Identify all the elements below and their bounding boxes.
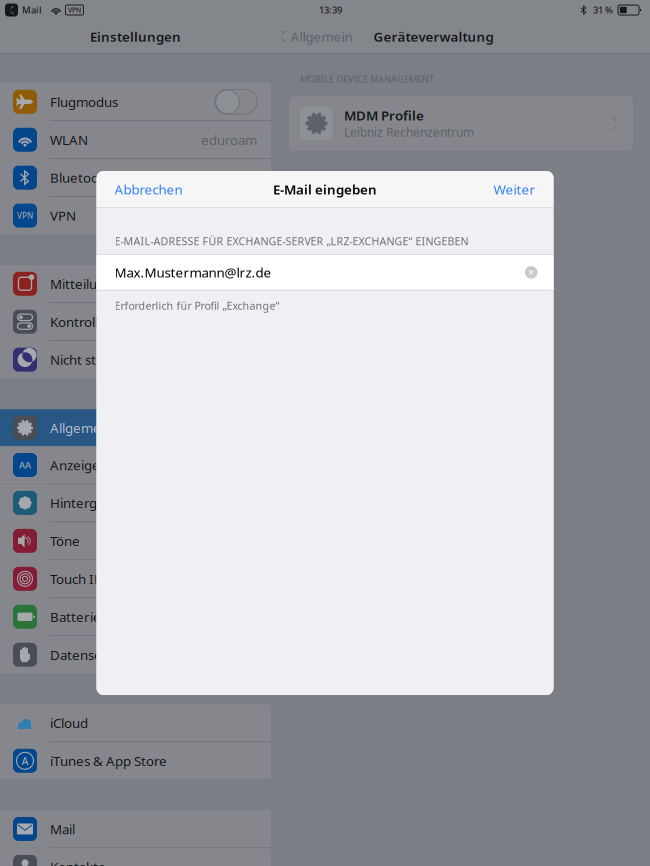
staticText: Erforderlich für Profil „Exchange“ <box>114 298 279 313</box>
button[interactable]: iCloud <box>0 704 271 741</box>
button[interactable]: Weiter <box>493 171 553 207</box>
button[interactable]: Mail <box>0 810 271 847</box>
staticText: Kontakte <box>50 858 106 866</box>
staticText: Hintergrundbild <box>50 494 149 512</box>
button[interactable]: Batterie <box>0 598 271 635</box>
button[interactable]: Flugmodus <box>0 83 271 120</box>
button[interactable]: Allgemein <box>271 20 352 53</box>
staticText: E-MAIL-ADRESSE FÜR EXCHANGE-SERVER „LRZ-… <box>114 234 468 248</box>
staticText: Weiter <box>493 180 535 198</box>
staticText: Mitteilungen <box>50 275 129 293</box>
staticText: Kontrollzentrum <box>50 313 151 331</box>
staticText: Ein <box>239 169 257 186</box>
button[interactable]: Allgemein <box>0 409 271 446</box>
staticText: Flugmodus <box>50 93 118 111</box>
staticText: Mail <box>22 4 42 16</box>
staticText: Leibniz Rechenzentrum <box>344 124 474 140</box>
staticText: AA <box>19 459 31 471</box>
staticText: Allgemein <box>290 28 352 45</box>
staticText: E-Mail eingeben <box>273 180 377 198</box>
staticText: Mail <box>50 820 75 838</box>
staticText: iTunes & App Store <box>50 752 167 770</box>
staticText: MOBILE DEVICE MANAGEMENT <box>300 73 434 85</box>
button[interactable]: Zurück zu Mail <box>0 0 18 19</box>
staticText: VPN <box>68 6 81 14</box>
staticText: MDM Profile <box>344 106 424 124</box>
button[interactable]: WLAN <box>0 121 271 158</box>
button[interactable]: Touch ID & Code <box>0 560 271 597</box>
staticText: Geräteverwaltung <box>373 28 493 45</box>
staticText: VPN <box>17 210 33 221</box>
button[interactable]: MDM Profile <box>289 96 633 151</box>
staticText: Max.Mustermann@lrz.de <box>114 263 271 281</box>
staticText: 31 % <box>593 4 613 16</box>
button[interactable]: Töne <box>0 522 271 559</box>
staticText: Anzeige & Helligkeit <box>50 456 174 474</box>
button[interactable]: Löschen <box>525 256 553 289</box>
button[interactable]: Datenschutz <box>0 636 271 673</box>
button[interactable]: Mitteilungen <box>0 265 271 302</box>
staticText: eduroam <box>201 131 257 149</box>
staticText: VPN <box>50 207 76 224</box>
staticText: Nicht stören <box>50 351 125 368</box>
staticText: Töne <box>50 532 80 550</box>
staticText: Einstellungen <box>90 28 181 45</box>
button[interactable]: A <box>0 742 271 779</box>
staticText: Bluetooth <box>50 169 112 186</box>
button[interactable]: Kontrollzentrum <box>0 303 271 340</box>
staticText: Abbrechen <box>114 180 182 198</box>
staticText: Touch ID & Code <box>50 570 152 588</box>
staticText: Batterie <box>50 608 101 626</box>
button[interactable]: Abbrechen <box>96 171 182 207</box>
staticText: Allgemein <box>50 419 112 437</box>
staticText: A <box>21 754 28 768</box>
button[interactable]: Nicht stören <box>0 341 271 378</box>
button[interactable]: AA <box>0 446 271 483</box>
staticText: Datenschutz <box>50 646 127 664</box>
staticText: 13:39 <box>319 4 342 16</box>
button[interactable]: Hintergrundbild <box>0 484 271 521</box>
button[interactable]: Bluetooth <box>0 159 271 196</box>
button[interactable]: VPN <box>0 197 271 234</box>
staticText: WLAN <box>50 131 88 149</box>
staticText: iCloud <box>50 714 88 732</box>
button[interactable]: Kontakte <box>0 848 271 866</box>
